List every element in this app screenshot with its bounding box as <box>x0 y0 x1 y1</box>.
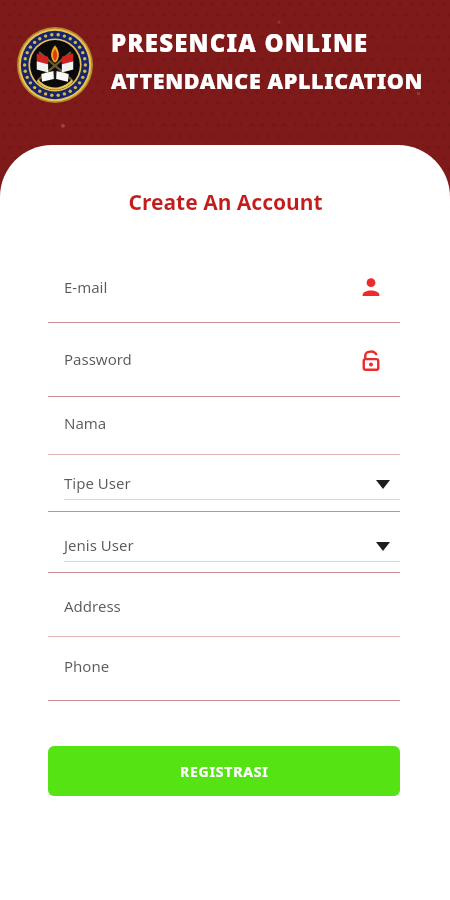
button[interactable]: REGISTRASI <box>48 746 400 796</box>
staticText: PRESENCIA ONLINE <box>111 26 369 59</box>
other: Password visibility <box>360 349 382 371</box>
staticText: Nama <box>64 413 107 433</box>
staticText: Phone <box>64 656 110 676</box>
staticText: ATTENDANCE APLLICATION <box>111 66 424 95</box>
button[interactable] <box>48 580 400 640</box>
button[interactable] <box>48 640 400 704</box>
other: Expand Tipe User <box>376 480 390 489</box>
button[interactable] <box>48 261 400 326</box>
staticText: REGISTRASI <box>180 762 269 781</box>
other: Expand Jenis User <box>376 542 390 551</box>
button[interactable] <box>48 333 400 400</box>
other: User <box>360 277 382 299</box>
button[interactable] <box>48 519 400 576</box>
staticText: Address <box>64 596 121 616</box>
staticText: Password <box>64 349 132 369</box>
button[interactable] <box>48 397 400 458</box>
button[interactable] <box>48 457 400 515</box>
staticText: E-mail <box>64 277 108 297</box>
staticText: Create An Account <box>128 188 323 217</box>
staticText: Jenis User <box>64 535 134 555</box>
other: App logo <box>17 27 93 103</box>
staticText: Tipe User <box>64 473 131 493</box>
